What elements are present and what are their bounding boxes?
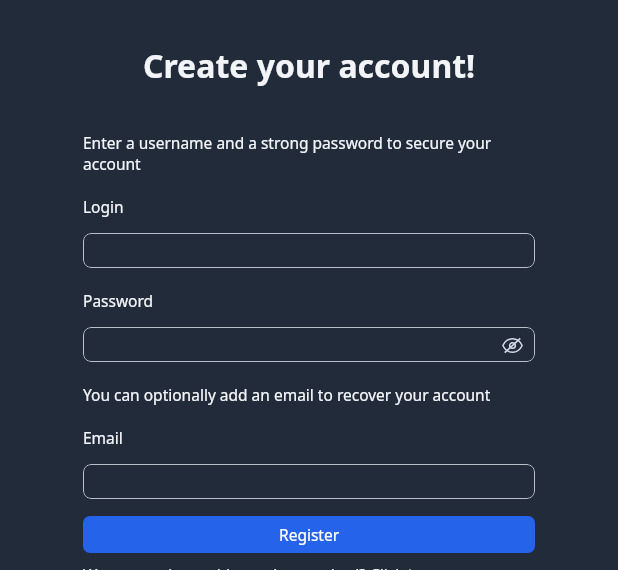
staticText: Want to register with another method? Cl… xyxy=(83,564,408,570)
staticText: Password xyxy=(83,290,154,311)
staticText: Login xyxy=(83,196,124,217)
button[interactable] xyxy=(83,464,535,499)
staticText: Register xyxy=(279,524,340,545)
button[interactable]: Show password xyxy=(499,332,525,358)
button[interactable]: Register xyxy=(83,516,535,553)
staticText: here xyxy=(408,564,442,570)
staticText: You can optionally add an email to recov… xyxy=(83,384,491,405)
staticText: Email xyxy=(83,427,123,448)
button[interactable]: Show password xyxy=(83,327,535,362)
staticText: Create your account! xyxy=(83,44,535,88)
button[interactable] xyxy=(83,233,535,268)
staticText: Enter a username and a strong password t… xyxy=(83,132,535,174)
button[interactable]: here xyxy=(408,564,442,570)
